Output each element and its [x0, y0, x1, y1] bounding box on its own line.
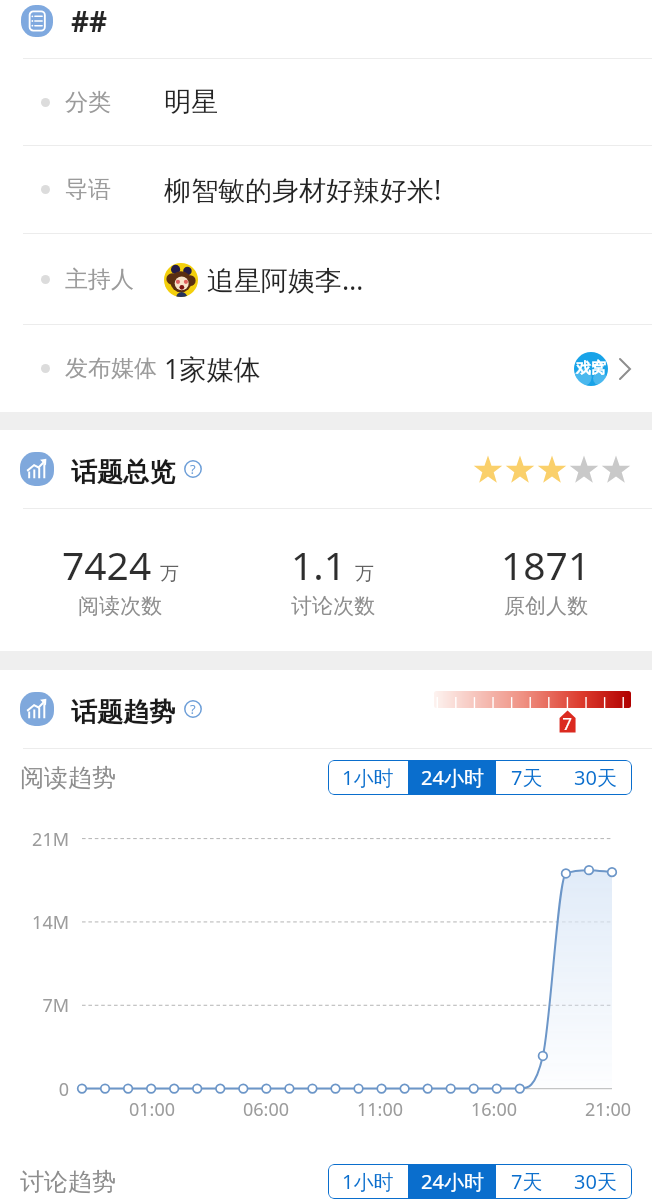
button[interactable]: 7424 — [14, 538, 226, 619]
staticText: 讨论趋势 — [20, 1167, 116, 1197]
staticText: 万 — [160, 562, 179, 586]
button[interactable]: 7天 — [496, 760, 558, 795]
staticText: 30天 — [574, 1168, 617, 1195]
button[interactable]: 分类 — [0, 59, 652, 145]
staticText: 万 — [355, 562, 374, 586]
staticText: 7 — [556, 712, 578, 735]
staticText: 1小时 — [342, 1168, 394, 1195]
staticText: 24小时 — [421, 1168, 484, 1195]
staticText: 阅读次数 — [78, 593, 162, 619]
staticText: 明星 — [164, 85, 218, 119]
button[interactable]: 发布媒体 — [0, 325, 652, 412]
staticText: 7天 — [511, 1168, 543, 1195]
staticText: 0 — [0, 1077, 69, 1102]
staticText: 追星阿姨李… — [207, 261, 364, 298]
staticText: ## — [71, 2, 108, 40]
staticText: 主持人 — [65, 265, 134, 294]
staticText: 戏窝 — [576, 359, 606, 378]
staticText: 7天 — [511, 764, 543, 791]
staticText: 16:00 — [454, 1097, 534, 1122]
staticText: 讨论次数 — [291, 593, 375, 619]
staticText: 21M — [0, 827, 69, 852]
staticText: 柳智敏的身材好辣好米! — [164, 171, 442, 208]
staticText: 1家媒体 — [164, 350, 261, 387]
button[interactable]: Help — [184, 460, 202, 478]
button[interactable]: 30天 — [558, 760, 632, 795]
button[interactable]: 1小时 — [328, 1164, 408, 1199]
staticText: 发布媒体 — [65, 354, 157, 383]
button[interactable]: Help — [184, 700, 202, 718]
staticText: 1小时 — [342, 764, 394, 791]
button[interactable]: 导语 — [0, 146, 652, 233]
staticText: 30天 — [574, 764, 617, 791]
staticText: 14M — [0, 910, 69, 935]
button[interactable]: 1小时 — [328, 760, 408, 795]
button[interactable]: 7天 — [496, 1164, 558, 1199]
staticText: 7M — [0, 993, 69, 1018]
button[interactable]: 24小时 — [408, 1164, 496, 1199]
button[interactable]: 主持人 — [0, 234, 652, 324]
staticText: 话题总览 — [71, 456, 175, 489]
staticText: 01:00 — [112, 1097, 192, 1122]
staticText: 阅读趋势 — [20, 763, 116, 793]
staticText: 21:00 — [568, 1097, 648, 1122]
other: More media — [619, 358, 631, 380]
staticText: 11:00 — [340, 1097, 420, 1122]
button[interactable]: 1871 — [439, 538, 652, 619]
button[interactable]: Heat level 7 — [434, 688, 631, 730]
staticText: ? — [190, 700, 196, 718]
button[interactable]: 1.1 — [226, 538, 439, 619]
button[interactable]: 24小时 — [408, 760, 496, 795]
staticText: 24小时 — [421, 764, 484, 791]
staticText: ? — [190, 460, 196, 478]
staticText: 话题趋势 — [71, 696, 175, 729]
staticText: 导语 — [65, 175, 111, 204]
staticText: 1.1 — [291, 538, 347, 591]
staticText: 06:00 — [226, 1097, 306, 1122]
staticText: 7424 — [62, 538, 152, 591]
staticText: 分类 — [65, 88, 111, 117]
staticText: 1871 — [501, 538, 591, 591]
button[interactable]: ## — [0, 0, 652, 58]
staticText: 原创人数 — [504, 593, 588, 619]
button[interactable]: 30天 — [558, 1164, 632, 1199]
